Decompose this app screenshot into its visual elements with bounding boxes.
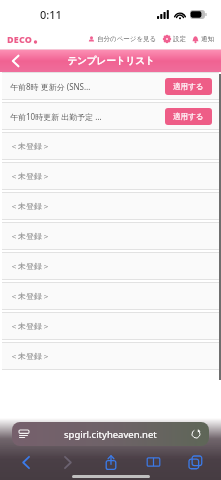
staticText: 0:11: [40, 7, 62, 22]
button[interactable]: 戻る: [10, 451, 42, 473]
staticText: クラミジア: [37, 465, 94, 479]
staticText: ＜未登録＞: [10, 351, 50, 361]
button[interactable]: ブックマーク: [137, 451, 169, 473]
button[interactable]: ＜未登録＞: [2, 162, 219, 190]
staticText: DECO: [7, 33, 33, 45]
button[interactable]: ＜未登録＞: [2, 222, 219, 250]
staticText: テンプレートリスト: [67, 55, 155, 67]
button[interactable]: タブ: [179, 451, 211, 473]
staticText: ＜未登録＞: [10, 291, 50, 301]
button[interactable]: ＜未登録＞: [2, 342, 219, 370]
staticText: 自分のページを見る: [97, 35, 157, 43]
staticText: 適用する: [173, 112, 204, 121]
button[interactable]: ＜未登録＞: [2, 192, 219, 220]
button[interactable]: 自分のページを見る: [87, 33, 158, 45]
button[interactable]: ＜未登録＞: [2, 312, 219, 340]
button[interactable]: 午前8時 更新分 (SNS…: [2, 72, 219, 100]
staticText: 通知: [201, 35, 214, 43]
staticText: 午前8時 更新分 (SNS…: [10, 81, 91, 92]
staticText: の予防に: [128, 465, 173, 479]
button[interactable]: ＜未登録＞: [2, 252, 219, 280]
button[interactable]: DECO home: [5, 31, 40, 47]
button[interactable]: ページ設定: [19, 429, 29, 439]
button[interactable]: 午前10時更新 出勤予定 …: [2, 102, 219, 130]
button[interactable]: 広告バナー: [0, 456, 221, 480]
button[interactable]: ＜未登録＞: [2, 132, 219, 160]
staticText: 設定: [173, 35, 186, 43]
staticText: ＜未登録＞: [10, 231, 50, 241]
button[interactable]: ページ設定: [12, 422, 209, 446]
staticText: ＜未登録＞: [10, 201, 50, 211]
staticText: 淋病: [101, 465, 123, 479]
staticText: ＜未登録＞: [10, 321, 50, 331]
button[interactable]: ＜未登録＞: [2, 282, 219, 310]
button[interactable]: 再読み込み: [191, 429, 201, 439]
button[interactable]: 適用する: [165, 108, 212, 125]
staticText: ＜未登録＞: [10, 171, 50, 181]
staticText: ＜未登録＞: [10, 261, 50, 271]
staticText: 梅毒: [8, 465, 30, 479]
staticText: 午前10時更新 出勤予定 …: [10, 111, 102, 122]
button[interactable]: 適用する: [165, 78, 212, 95]
button[interactable]: 進む: [52, 451, 84, 473]
staticText: ＜未登録＞: [10, 141, 50, 151]
staticText: 適用する: [173, 82, 204, 91]
staticText: spgirl.cityheaven.net: [64, 428, 157, 441]
button[interactable]: Back: [0, 50, 30, 72]
button[interactable]: 設定: [162, 33, 187, 45]
button[interactable]: 通知: [191, 33, 215, 45]
button[interactable]: 共有: [95, 451, 127, 473]
